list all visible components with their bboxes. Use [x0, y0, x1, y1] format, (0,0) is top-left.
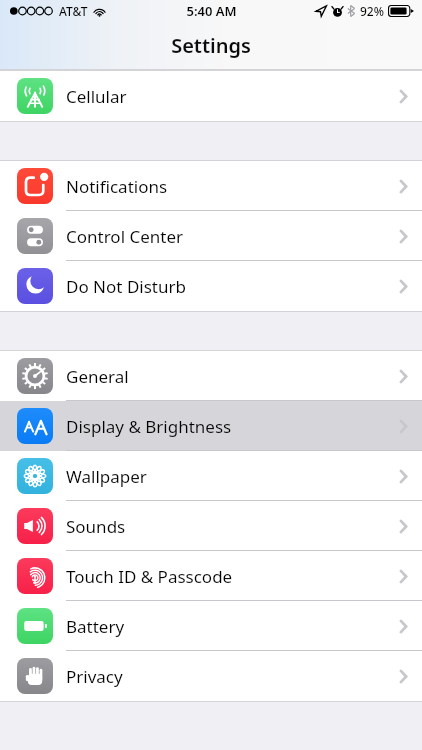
button[interactable]: Privacy: [0, 651, 422, 701]
button[interactable]: Display & Brightness: [0, 401, 422, 451]
button[interactable]: General: [0, 351, 422, 401]
button[interactable]: Control Center: [0, 211, 422, 261]
staticText: Wallpaper: [66, 465, 147, 488]
staticText: 5:40 AM: [186, 2, 237, 20]
staticText: Battery: [66, 615, 125, 638]
button[interactable]: Cellular: [0, 71, 422, 121]
staticText: Display & Brightness: [66, 415, 232, 438]
button[interactable]: Do Not Disturb: [0, 261, 422, 311]
button[interactable]: Wallpaper: [0, 451, 422, 501]
staticText: Sounds: [66, 515, 126, 538]
staticText: Settings: [171, 32, 251, 59]
staticText: 92%: [360, 3, 384, 19]
staticText: Privacy: [66, 665, 123, 688]
staticText: Do Not Disturb: [66, 275, 186, 298]
staticText: Touch ID & Passcode: [66, 565, 233, 588]
staticText: AT&T: [59, 3, 88, 19]
staticText: Notifications: [66, 175, 168, 198]
button[interactable]: Touch ID & Passcode: [0, 551, 422, 601]
button[interactable]: Sounds: [0, 501, 422, 551]
button[interactable]: Battery: [0, 601, 422, 651]
staticText: General: [66, 365, 129, 388]
staticText: Cellular: [66, 85, 127, 108]
button[interactable]: Notifications: [0, 161, 422, 211]
staticText: Control Center: [66, 225, 184, 248]
